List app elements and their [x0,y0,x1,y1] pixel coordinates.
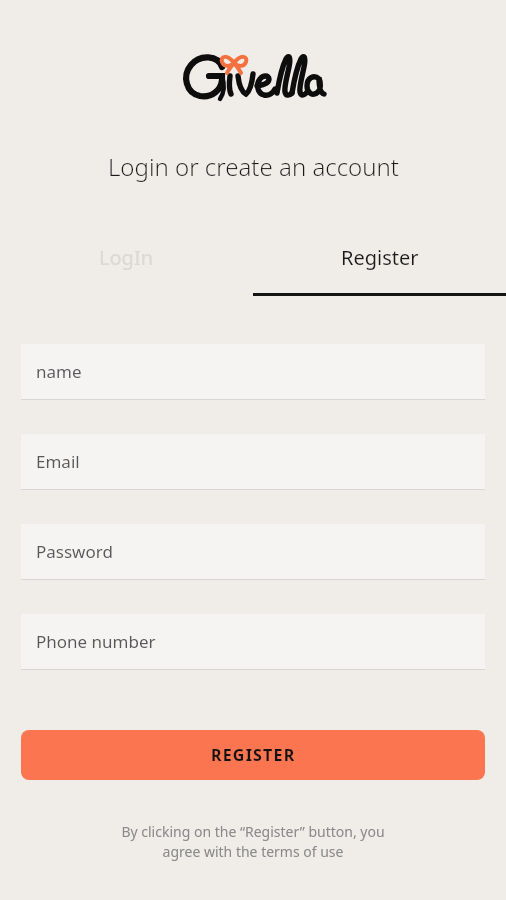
staticText: name [36,360,82,383]
button[interactable]: Phone number [21,614,485,669]
button[interactable]: Register [253,237,506,296]
staticText: REGISTER [211,744,296,766]
staticText: Register [341,244,419,271]
staticText: Phone number [36,630,156,653]
button[interactable]: Email [21,434,485,489]
staticText: By clicking on the “Register” button, yo… [121,822,385,861]
staticText: Email [36,450,80,473]
staticText: LogIn [99,244,154,271]
staticText: Password [36,540,113,563]
staticText: Login or create an account [108,150,399,183]
button[interactable]: name [21,344,485,399]
button[interactable]: Password [21,524,485,579]
other: Givella logo [178,43,328,107]
button[interactable]: REGISTER [21,730,485,780]
